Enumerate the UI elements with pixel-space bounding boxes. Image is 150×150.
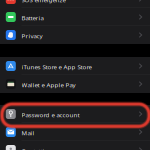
button[interactable]: Wallet e Apple Pay [0,75,150,93]
staticText: Batteria [21,14,43,22]
button[interactable]: Privacy [0,26,150,44]
button[interactable]: Contatti [0,141,150,150]
button[interactable]: SOS [0,0,150,8]
button[interactable]: Mail [0,123,150,141]
staticText: Contatti [21,147,44,150]
button[interactable]: iTunes Store e App Store [0,57,150,75]
staticText: Wallet e Apple Pay [21,81,75,89]
button[interactable]: Password e account [0,105,150,123]
staticText: SOS [7,0,14,2]
staticText: Privacy [21,32,42,40]
staticText: Password e account [21,111,79,119]
staticText: Mail [21,129,34,137]
staticText: SOS emergenze [21,0,65,4]
staticText: iTunes Store e App Store [21,63,91,71]
button[interactable]: Batteria [0,8,150,26]
